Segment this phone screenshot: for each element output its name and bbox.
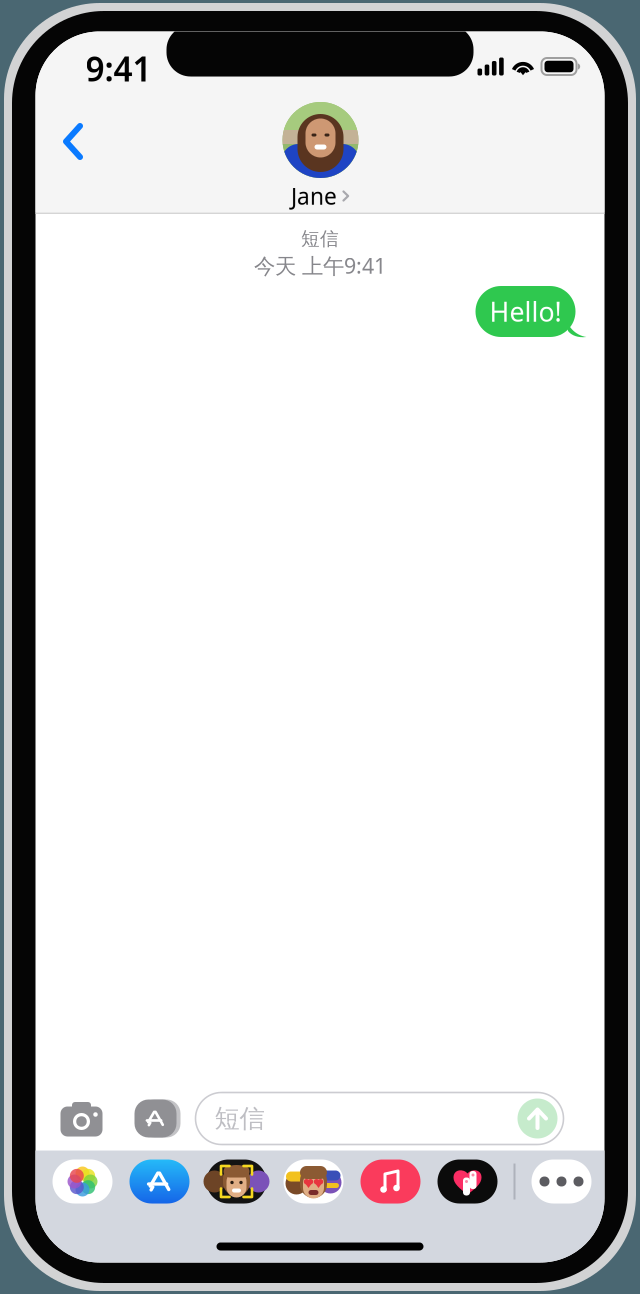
staticText: Jane: [291, 181, 337, 211]
button[interactable]: More: [531, 1159, 591, 1203]
button[interactable]: Apps: [129, 1093, 181, 1143]
button[interactable]: Back: [41, 109, 105, 173]
staticText: 短信: [301, 227, 339, 250]
staticText: 短信: [214, 1103, 264, 1134]
button[interactable]: Camera: [55, 1093, 107, 1143]
staticText: 今天 上午9:41: [254, 251, 386, 280]
button[interactable]: Stickers: [283, 1159, 343, 1203]
button[interactable]: Jane: [282, 102, 358, 206]
button[interactable]: Memoji: [206, 1159, 266, 1203]
button[interactable]: Photos: [52, 1159, 112, 1203]
staticText: Hello!: [489, 294, 561, 329]
button[interactable]: App Store: [129, 1159, 189, 1203]
button[interactable]: Music: [360, 1159, 420, 1203]
button[interactable]: Send: [517, 1098, 557, 1138]
button[interactable]: Digital Touch: [437, 1159, 497, 1203]
staticText: 9:41: [85, 46, 151, 91]
